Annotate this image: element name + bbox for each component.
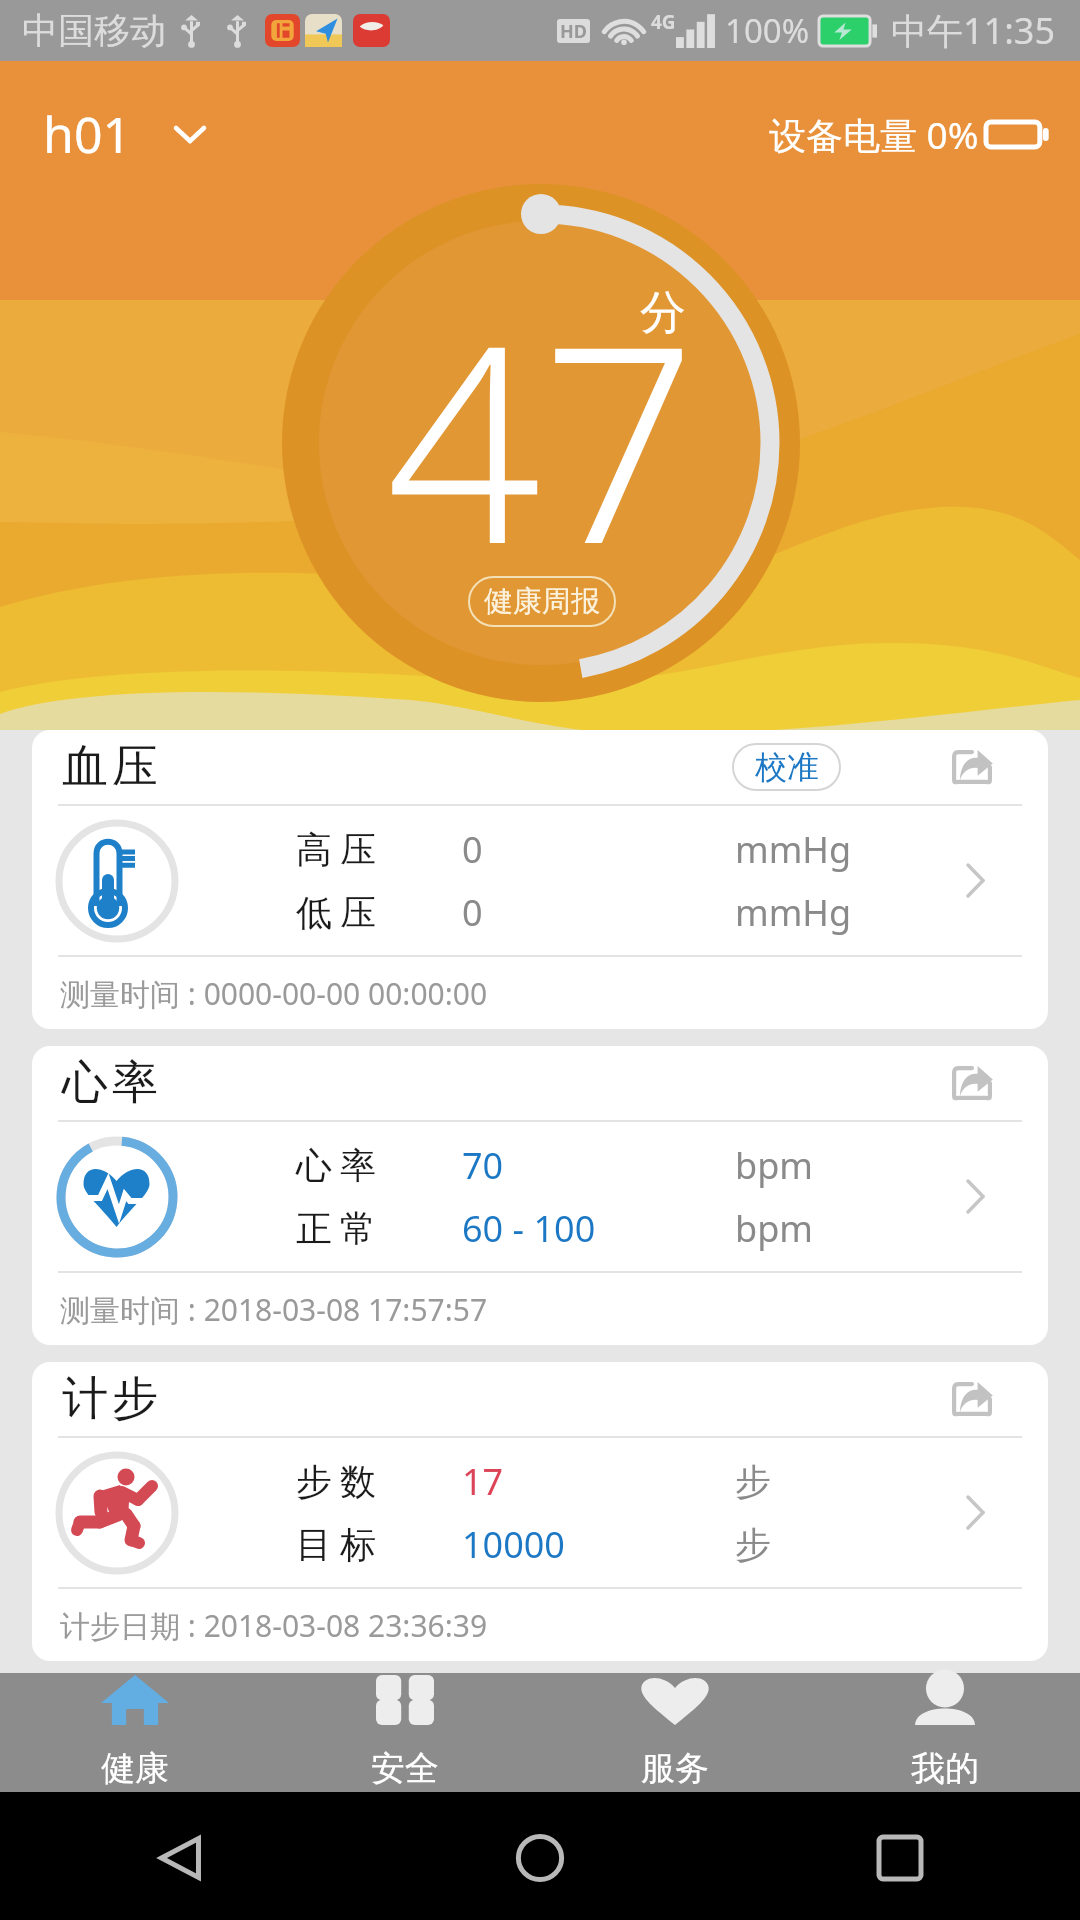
staticText: mmHg (735, 888, 852, 937)
staticText: 0 (462, 888, 483, 937)
staticText: 健康周报 (484, 583, 600, 620)
button[interactable]: Home (516, 1834, 564, 1882)
button[interactable]: Recents (876, 1834, 924, 1882)
staticText: 安全 (371, 1747, 439, 1790)
button[interactable]: h01 (43, 100, 206, 168)
staticText: 中国移动 (22, 8, 166, 53)
staticText: mmHg (735, 825, 852, 874)
staticText: 高压 (292, 827, 380, 872)
button[interactable]: 健康周报 (468, 576, 616, 627)
staticText: HD (560, 19, 587, 43)
button[interactable]: 计步 (32, 1362, 1048, 1661)
staticText: 测量时间 : 2018-03-08 17:57:57 (60, 1289, 488, 1330)
button[interactable]: Back (156, 1834, 204, 1882)
staticText: 我的 (911, 1747, 979, 1790)
staticText: 中午11:35 (891, 6, 1056, 55)
button[interactable]: 服务 (540, 1673, 810, 1792)
staticText: 校准 (755, 747, 819, 787)
button[interactable]: Share (944, 1055, 1000, 1111)
button[interactable]: 血压 (32, 730, 1048, 1029)
staticText: 步数 (292, 1459, 380, 1504)
button[interactable]: 安全 (270, 1673, 540, 1792)
staticText: 步 (735, 1522, 771, 1567)
staticText: bpm (735, 1204, 813, 1253)
staticText: 心率 (292, 1143, 380, 1188)
button[interactable]: 心率 (32, 1046, 1048, 1345)
staticText: 步 (735, 1459, 771, 1504)
button[interactable]: 我的 (810, 1673, 1080, 1792)
staticText: 服务 (641, 1747, 709, 1790)
button[interactable]: Share (944, 739, 1000, 795)
staticText: h01 (43, 100, 132, 168)
staticText: 60 - 100 (462, 1204, 596, 1253)
staticText: 10000 (462, 1520, 565, 1569)
staticText: 4G (651, 9, 676, 35)
button[interactable]: 校准 (732, 743, 841, 791)
staticText: 测量时间 : 0000-00-00 00:00:00 (60, 973, 488, 1014)
staticText: 低压 (292, 890, 380, 935)
staticText: 设备电量 0% (769, 109, 979, 160)
staticText: 健康 (101, 1747, 169, 1790)
staticText: 计步日期 : 2018-03-08 23:36:39 (60, 1605, 488, 1646)
staticText: 目标 (292, 1522, 380, 1567)
staticText: 血压 (60, 738, 160, 796)
staticText: 17 (462, 1457, 504, 1506)
staticText: 正常 (292, 1206, 380, 1251)
staticText: 计步 (60, 1370, 160, 1428)
staticText: 47 (386, 252, 697, 622)
staticText: 100% (725, 8, 810, 53)
staticText: bpm (735, 1141, 813, 1190)
button[interactable]: 健康 (0, 1673, 270, 1792)
staticText: 心率 (60, 1054, 160, 1112)
button[interactable]: Share (944, 1371, 1000, 1427)
staticText: 70 (462, 1141, 504, 1190)
staticText: 0 (462, 825, 483, 874)
staticText: 分 (640, 284, 686, 342)
